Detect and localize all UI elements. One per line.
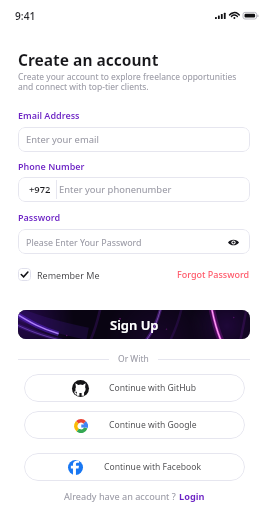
staticText: +972	[29, 183, 51, 196]
button[interactable]: Continue with Facebook	[24, 453, 245, 481]
staticText: Continue with Facebook	[104, 461, 202, 473]
staticText: Email Address	[18, 109, 80, 121]
staticText: Already have an account ?	[64, 490, 179, 503]
staticText: Please Enter Your Password	[26, 236, 225, 248]
staticText: Enter your phonenumber	[59, 183, 172, 196]
button[interactable]: Continue with Google	[24, 411, 245, 439]
staticText: 9:41	[15, 9, 36, 23]
button[interactable]: Continue with GitHub	[24, 374, 245, 402]
button[interactable]: Sign Up	[18, 310, 250, 339]
button[interactable]: Remember Me	[18, 268, 100, 281]
staticText: Or With	[118, 353, 149, 365]
staticText: Create an account	[18, 49, 159, 70]
button[interactable]: Show password	[225, 234, 241, 250]
button[interactable]: Login	[179, 490, 205, 503]
staticText: Password	[18, 211, 61, 223]
staticText: Continue with Google	[109, 419, 197, 431]
button[interactable]: +972	[18, 177, 250, 202]
button[interactable]: Enter your email	[18, 127, 250, 152]
staticText: Phone Number	[18, 160, 85, 172]
button[interactable]: Forgot Password	[177, 268, 250, 280]
staticText: Enter your email	[26, 133, 99, 146]
staticText: Sign Up	[110, 316, 159, 334]
staticText: Create your account to explore freelance…	[18, 71, 250, 93]
staticText: Remember Me	[37, 269, 100, 281]
button[interactable]: Please Enter Your Password	[18, 229, 250, 254]
staticText: Continue with GitHub	[109, 382, 197, 394]
